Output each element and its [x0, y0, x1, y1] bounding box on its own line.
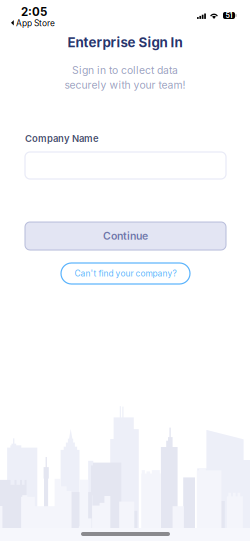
button[interactable]: Can't find your company? — [61, 263, 190, 284]
staticText: 51 — [225, 11, 232, 20]
staticText: Company Name — [25, 133, 99, 144]
staticText: securely with your team! — [64, 79, 185, 91]
staticText: Can't find your company? — [74, 268, 176, 279]
button[interactable]: Continue — [25, 222, 226, 250]
staticText: Enterprise Sign In — [67, 34, 182, 50]
staticText: Sign in to collect data — [72, 64, 178, 77]
staticText: App Store — [16, 18, 55, 28]
staticText: Continue — [103, 230, 148, 242]
staticText: 2:05 — [21, 5, 47, 19]
